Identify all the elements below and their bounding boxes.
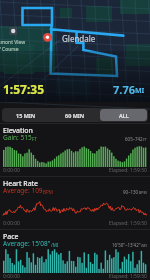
staticText: 0:00:00 [3, 220, 20, 227]
staticText: Elapsed: 1:59:50 [109, 167, 147, 174]
staticText: Oakmont View Golf Course [0, 39, 26, 53]
staticText: 60 MIN [65, 112, 85, 119]
staticText: 1:57:35 [3, 81, 45, 97]
staticText: BPM [139, 190, 147, 195]
staticText: Heart Rate [3, 179, 39, 189]
staticText: /MI [51, 242, 59, 248]
button[interactable]: ALL [100, 109, 147, 121]
button[interactable]: 15 MIN [3, 109, 49, 121]
staticText: BPM [43, 189, 53, 195]
staticText: Gain: 515 [3, 133, 32, 142]
staticText: Glendale [62, 33, 96, 44]
staticText: Elapsed: 1:59:50 [109, 220, 147, 227]
staticText: 90–130 [123, 189, 139, 195]
staticText: 605–742 [125, 136, 143, 142]
staticText: Average: 109 [3, 186, 43, 195]
staticText: /MI [141, 243, 147, 248]
staticText: MI [135, 86, 145, 96]
staticText: 15 MIN [16, 112, 36, 119]
button[interactable]: 60 MIN [51, 109, 98, 121]
staticText: 0:00:00 [3, 273, 20, 280]
staticText: Average: 15'08" [3, 239, 51, 248]
staticText: Elapsed: 1:59:50 [109, 273, 147, 280]
staticText: ALL [119, 112, 129, 119]
staticText: 16'50"–13'42" [112, 242, 141, 248]
staticText: FT [143, 137, 147, 142]
staticText: Elevation [3, 126, 33, 136]
staticText: 7.76 [113, 82, 135, 97]
staticText: FT [32, 136, 37, 142]
staticText: 0:00:00 [3, 167, 20, 174]
staticText: Pace [3, 232, 19, 242]
